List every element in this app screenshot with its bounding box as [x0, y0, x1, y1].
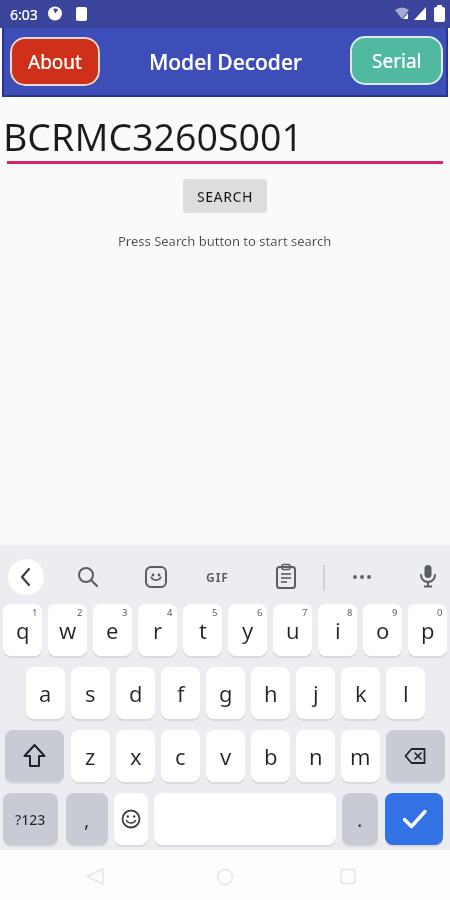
button[interactable]: e [93, 604, 132, 656]
button[interactable]: x [116, 730, 155, 782]
staticText: s [85, 678, 96, 708]
staticText: 1 [32, 606, 38, 619]
button[interactable] [348, 563, 376, 591]
button[interactable] [5, 730, 64, 782]
staticText: ?123 [15, 810, 46, 829]
staticText: u [286, 615, 300, 645]
staticText: a [39, 678, 52, 708]
staticText: k [355, 678, 367, 708]
staticText: j [313, 678, 319, 708]
button[interactable]: o [363, 604, 402, 656]
button[interactable]: About [10, 37, 100, 86]
button[interactable]: ?123 [3, 793, 58, 845]
staticText: 5 [212, 606, 218, 619]
staticText: l [403, 678, 409, 708]
staticText: 6 [257, 606, 263, 619]
button[interactable]: i [318, 604, 357, 656]
button[interactable] [272, 563, 300, 591]
staticText: Press Search button to start search [118, 232, 332, 250]
button[interactable]: z [71, 730, 110, 782]
staticText: 9 [392, 606, 398, 619]
staticText: 8 [347, 606, 353, 619]
button[interactable] [326, 860, 371, 892]
button[interactable]: . [342, 793, 378, 845]
button[interactable]: n [296, 730, 335, 782]
staticText: 6:03 [10, 5, 38, 24]
button[interactable] [386, 730, 445, 782]
button[interactable]: p [408, 604, 447, 656]
button[interactable]: GIF [200, 563, 234, 591]
button[interactable]: l [386, 667, 425, 719]
button[interactable]: SEARCH [183, 179, 267, 213]
button[interactable]: f [161, 667, 200, 719]
button[interactable]: d [116, 667, 155, 719]
staticText: d [129, 678, 143, 708]
button[interactable]: g [206, 667, 245, 719]
staticText: m [350, 741, 371, 771]
button[interactable]: BCRMC3260S001 [0, 100, 450, 164]
button[interactable]: y [228, 604, 267, 656]
staticText: i [335, 615, 341, 645]
button[interactable]: a [26, 667, 65, 719]
staticText: 2 [77, 606, 83, 619]
staticText: BCRMC3260S001 [3, 111, 303, 162]
button[interactable] [203, 860, 248, 892]
staticText: v [220, 741, 232, 771]
staticText: r [153, 615, 163, 645]
staticText: o [376, 615, 390, 645]
staticText: 7 [302, 606, 308, 619]
staticText: Serial [372, 48, 422, 74]
staticText: 3 [122, 606, 128, 619]
button[interactable]: j [296, 667, 335, 719]
button[interactable] [142, 563, 170, 591]
button[interactable]: t [183, 604, 222, 656]
staticText: SEARCH [197, 187, 253, 206]
staticText: h [264, 678, 278, 708]
staticText: b [264, 741, 278, 771]
button[interactable]: r [138, 604, 177, 656]
button[interactable]: h [251, 667, 290, 719]
button[interactable] [414, 562, 442, 590]
button[interactable]: q [3, 604, 42, 656]
button[interactable]: u [273, 604, 312, 656]
staticText: n [309, 741, 323, 771]
staticText: t [199, 615, 207, 645]
button[interactable]: m [341, 730, 380, 782]
button[interactable] [74, 563, 102, 591]
staticText: , [84, 806, 90, 833]
staticText: e [106, 615, 119, 645]
staticText: GIF [206, 569, 229, 585]
staticText: z [85, 741, 96, 771]
button[interactable]: Serial [350, 36, 443, 85]
staticText: y [242, 615, 254, 645]
staticText: q [16, 615, 30, 645]
staticText: 4 [167, 606, 173, 619]
button[interactable]: s [71, 667, 110, 719]
button[interactable]: c [161, 730, 200, 782]
button[interactable]: w [48, 604, 87, 656]
staticText: p [421, 615, 435, 645]
button[interactable]: , [66, 793, 108, 845]
button[interactable]: k [341, 667, 380, 719]
staticText: c [175, 741, 186, 771]
staticText: w [59, 615, 77, 645]
staticText: x [130, 741, 142, 771]
button[interactable]: v [206, 730, 245, 782]
button[interactable] [385, 793, 443, 845]
staticText: . [357, 806, 363, 833]
staticText: Model Decoder [149, 48, 302, 77]
staticText: f [177, 678, 185, 708]
staticText: About [28, 49, 82, 75]
button[interactable] [8, 559, 44, 595]
button[interactable] [114, 793, 148, 845]
button[interactable]: b [251, 730, 290, 782]
staticText: g [219, 678, 233, 708]
staticText: 0 [437, 606, 443, 619]
button[interactable] [80, 860, 125, 892]
